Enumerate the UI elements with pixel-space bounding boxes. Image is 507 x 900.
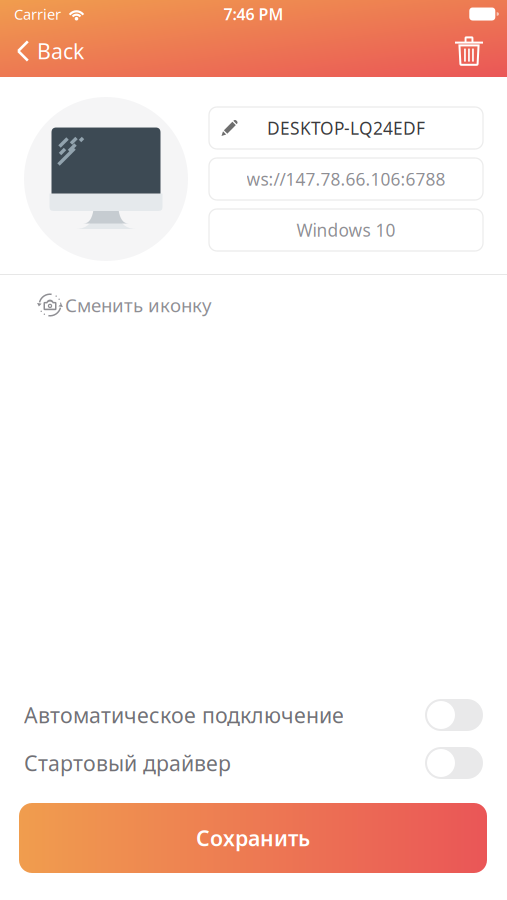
button[interactable]: Delete (435, 28, 507, 74)
staticText: Автоматическое подключение (24, 701, 344, 729)
button[interactable]: Сохранить (19, 803, 487, 873)
staticText: DESKTOP-LQ24EDF (267, 116, 425, 139)
button[interactable]: Сменить иконку (0, 275, 507, 335)
button[interactable]: Автоматическое подключение (425, 699, 483, 731)
staticText: Carrier (14, 4, 61, 24)
staticText: Windows 10 (296, 218, 395, 241)
staticText: Сменить иконку (65, 293, 212, 317)
staticText: Сохранить (196, 824, 310, 852)
button[interactable]: Back (0, 28, 98, 74)
button[interactable]: Стартовый драйвер (425, 747, 483, 779)
staticText: 7:46 PM (223, 3, 283, 25)
staticText: ws://147.78.66.106:6788 (246, 167, 445, 190)
staticText: Стартовый драйвер (24, 749, 231, 777)
staticText: Back (37, 37, 84, 65)
